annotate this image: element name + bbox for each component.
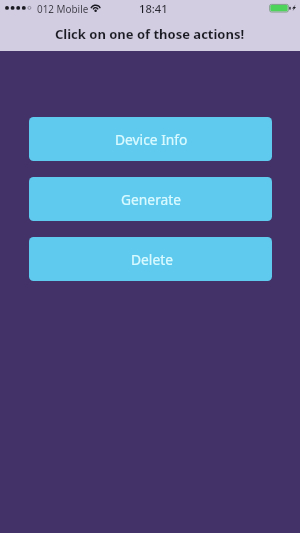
- button[interactable]: Generate: [29, 177, 272, 221]
- staticText: 18:41: [139, 1, 168, 16]
- staticText: Generate: [121, 190, 182, 209]
- staticText: 012 Mobile: [37, 2, 89, 15]
- button[interactable]: Delete: [29, 237, 272, 281]
- button[interactable]: Device Info: [29, 117, 272, 161]
- staticText: Click on one of those actions!: [55, 25, 245, 43]
- staticText: Device Info: [115, 130, 188, 149]
- other: Signal strength, Wi-Fi connected, batter…: [0, 0, 300, 20]
- staticText: Delete: [131, 250, 173, 269]
